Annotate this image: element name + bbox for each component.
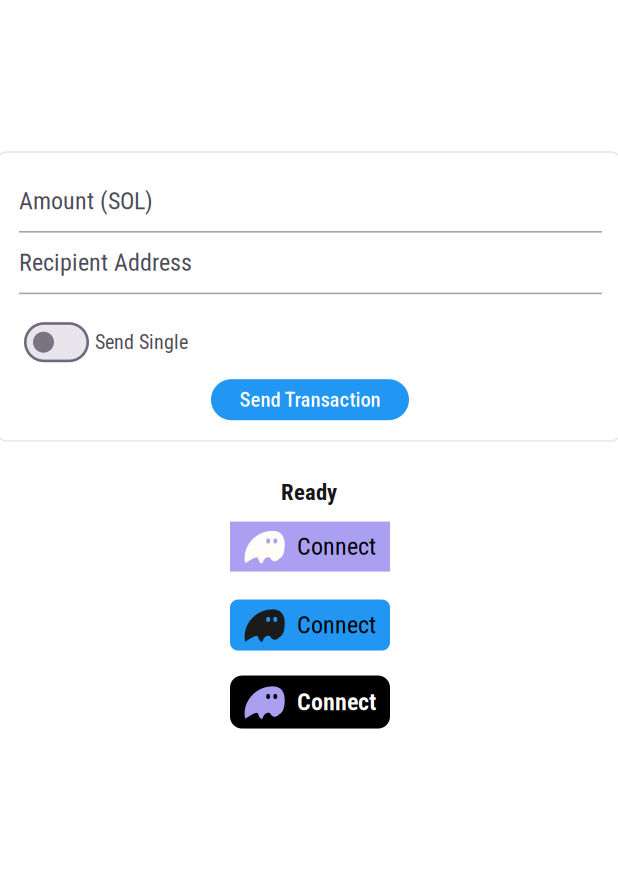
staticText: Amount (SOL) [19, 187, 153, 215]
button[interactable]: Connect [229, 676, 389, 729]
button[interactable]: Connect [229, 522, 389, 572]
staticText: Connect [297, 688, 376, 716]
staticText: Connect [297, 532, 376, 561]
staticText: Send Transaction [239, 388, 380, 412]
button[interactable]: Send Transaction [211, 379, 409, 420]
button[interactable]: Connect [229, 600, 389, 651]
button[interactable]: Recipient Address [19, 251, 602, 294]
button[interactable]: Amount (SOL) [19, 189, 602, 233]
staticText: Connect [297, 611, 376, 639]
staticText: Send Single [95, 330, 188, 354]
button[interactable]: Send Single [19, 322, 188, 362]
staticText: Ready [281, 479, 337, 506]
staticText: Recipient Address [19, 248, 192, 277]
